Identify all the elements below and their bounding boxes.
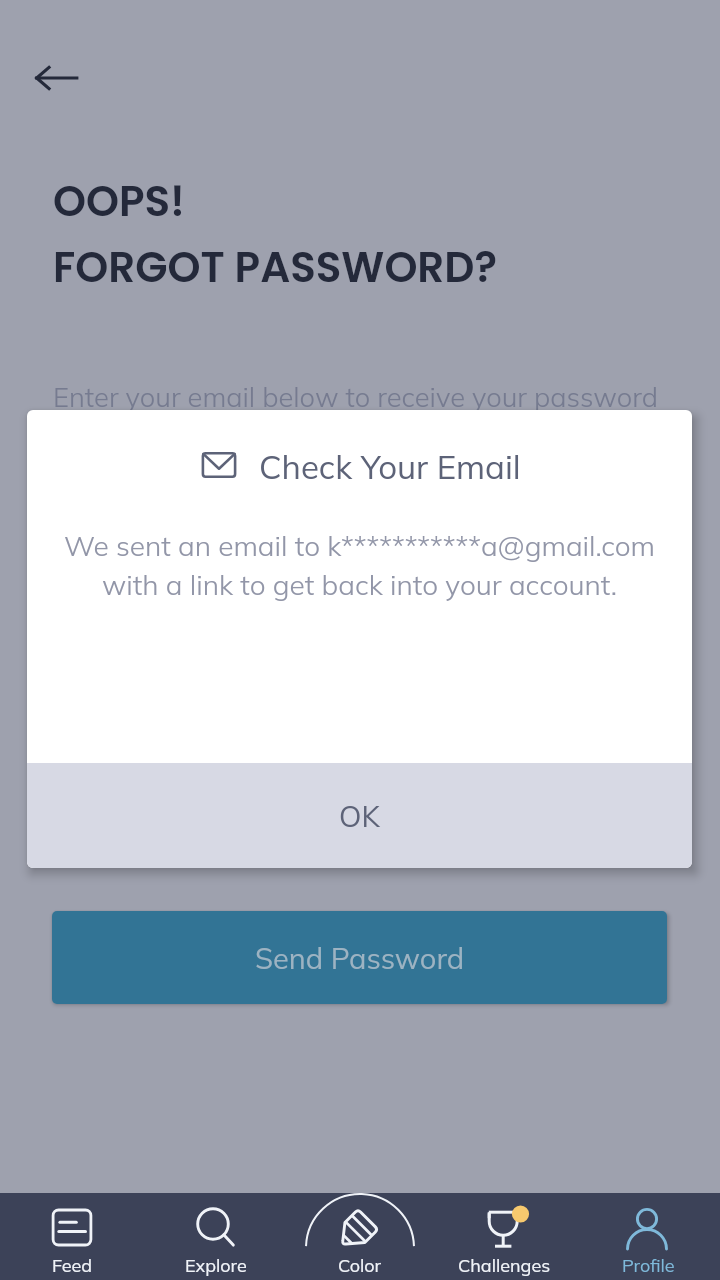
staticText: Check Your Email: [259, 446, 521, 487]
button[interactable]: Explore: [144, 1193, 288, 1280]
staticText: Send Password: [255, 940, 465, 976]
staticText: Feed: [52, 1254, 93, 1277]
staticText: FORGOT PASSWORD?: [53, 238, 497, 297]
staticText: Color: [338, 1254, 382, 1277]
staticText: Profile: [622, 1254, 675, 1277]
button[interactable]: OK: [27, 763, 692, 868]
staticText: We sent an email to k***********a@gmail.…: [45, 528, 674, 602]
staticText: OOPS!: [53, 172, 185, 231]
button[interactable]: Back: [24, 45, 89, 110]
staticText: Explore: [185, 1254, 247, 1277]
button[interactable]: Color: [288, 1193, 432, 1280]
button[interactable]: Feed: [0, 1193, 144, 1280]
staticText: OK: [339, 798, 380, 834]
button[interactable]: Send Password: [52, 911, 667, 1004]
button[interactable]: Profile: [576, 1193, 720, 1280]
button[interactable]: Challenges: [432, 1193, 576, 1280]
staticText: Challenges: [458, 1254, 551, 1277]
staticText: Enter your email below to receive your p…: [53, 380, 658, 414]
